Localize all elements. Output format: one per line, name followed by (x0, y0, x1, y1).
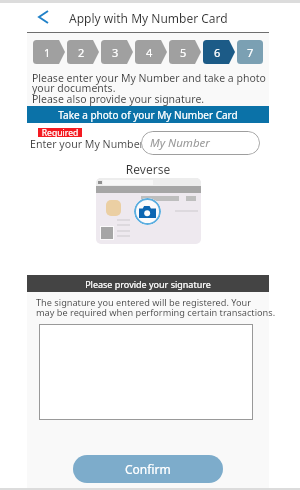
staticText: Please provide your signature (28, 278, 268, 290)
staticText: 1 (44, 45, 51, 60)
staticText: 6 (214, 45, 221, 60)
button[interactable]: Take photo of card reverse (96, 178, 201, 244)
staticText: 3 (112, 45, 119, 60)
button[interactable]: Back (30, 5, 56, 31)
staticText: Confirm (125, 461, 171, 477)
staticText: 5 (180, 45, 187, 60)
staticText: Enter your My Number (30, 137, 180, 151)
staticText: Apply with My Number Card (69, 10, 228, 26)
button[interactable]: My Number (141, 131, 260, 155)
staticText: Please also provide your signature. (32, 92, 272, 106)
staticText: The signature you entered will be regist… (36, 296, 276, 309)
staticText: Reverse (27, 161, 269, 177)
staticText: your documents. (32, 81, 272, 95)
staticText: 7 (247, 45, 254, 60)
staticText: 4 (146, 45, 153, 60)
button[interactable]: Signature area (39, 324, 253, 420)
staticText: Take a photo of your My Number Card (28, 108, 268, 122)
staticText: Required (30, 127, 90, 139)
staticText: may be required when performing certain … (36, 306, 276, 319)
staticText: My Number (150, 135, 210, 151)
staticText: Please enter your My Number and take a p… (32, 71, 272, 85)
button[interactable]: Confirm (73, 455, 223, 483)
staticText: 2 (78, 45, 85, 60)
